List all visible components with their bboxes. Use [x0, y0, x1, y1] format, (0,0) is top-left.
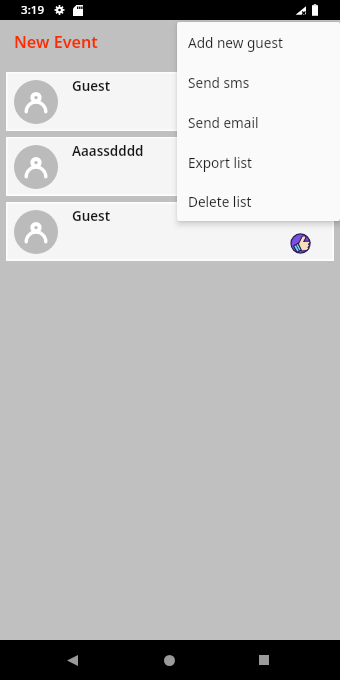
staticText: Guest — [72, 207, 111, 225]
staticText: 3:19 — [21, 2, 45, 18]
button[interactable]: Recents — [246, 642, 282, 678]
button[interactable]: Send sms — [177, 62, 340, 102]
staticText: New Event — [14, 31, 98, 53]
staticText: Guest — [72, 77, 111, 95]
button[interactable]: Home — [151, 642, 187, 678]
button[interactable]: Guest — [6, 202, 334, 261]
button[interactable]: Send email — [177, 102, 340, 142]
staticText: Send sms — [188, 73, 250, 92]
staticText: Add new guest — [188, 33, 283, 52]
staticText: Aaassdddd — [72, 142, 144, 160]
button[interactable]: Back — [54, 642, 90, 678]
button[interactable]: Guest — [6, 72, 334, 131]
button[interactable]: Delete list — [177, 182, 340, 221]
button[interactable]: Export list — [177, 142, 340, 182]
staticText: Export list — [188, 153, 252, 172]
staticText: Send email — [188, 113, 259, 132]
button[interactable]: Thumbs up — [290, 233, 311, 254]
button[interactable]: Aaassdddd — [6, 137, 334, 196]
staticText: Delete list — [188, 192, 252, 211]
button[interactable]: Add new guest — [177, 22, 340, 62]
